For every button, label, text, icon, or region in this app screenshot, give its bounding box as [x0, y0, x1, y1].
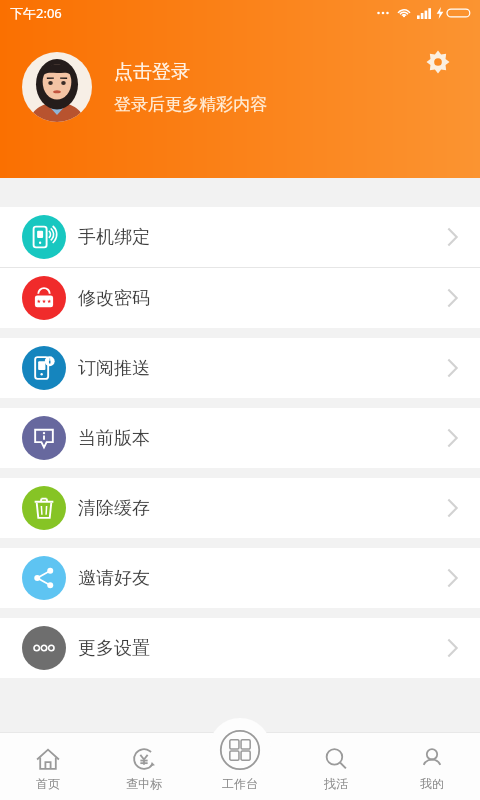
button[interactable]: 手机绑定	[0, 207, 480, 267]
staticText: 首页	[36, 776, 60, 791]
staticText: 手机绑定	[78, 226, 150, 249]
button[interactable]: 首页	[0, 718, 96, 800]
staticText: 修改密码	[78, 287, 150, 310]
staticText: 邀请好友	[78, 567, 150, 590]
button[interactable]: 更多设置	[0, 618, 480, 678]
staticText: 当前版本	[78, 427, 150, 450]
staticText: 工作台	[222, 776, 258, 791]
staticText: 清除缓存	[78, 497, 150, 520]
button[interactable]: 清除缓存	[0, 478, 480, 538]
staticText: 登录后更多精彩内容	[114, 94, 267, 115]
button[interactable]: 工作台	[192, 718, 288, 800]
button[interactable]: 我的	[384, 718, 480, 800]
staticText: 更多设置	[78, 637, 150, 660]
button[interactable]: 找活	[288, 718, 384, 800]
button[interactable]: 订阅推送	[0, 338, 480, 398]
staticText: 找活	[324, 776, 348, 791]
staticText: 点击登录	[114, 60, 190, 84]
staticText: 下午2:06	[10, 4, 62, 22]
staticText: 订阅推送	[78, 357, 150, 380]
button[interactable]: Settings	[416, 40, 460, 84]
button[interactable]: 当前版本	[0, 408, 480, 468]
button[interactable]: 修改密码	[0, 268, 480, 328]
staticText: 我的	[420, 776, 444, 791]
button[interactable]: 邀请好友	[0, 548, 480, 608]
button[interactable]: 点击登录	[22, 52, 267, 122]
staticText: 查中标	[126, 776, 162, 791]
button[interactable]: 查中标	[96, 718, 192, 800]
